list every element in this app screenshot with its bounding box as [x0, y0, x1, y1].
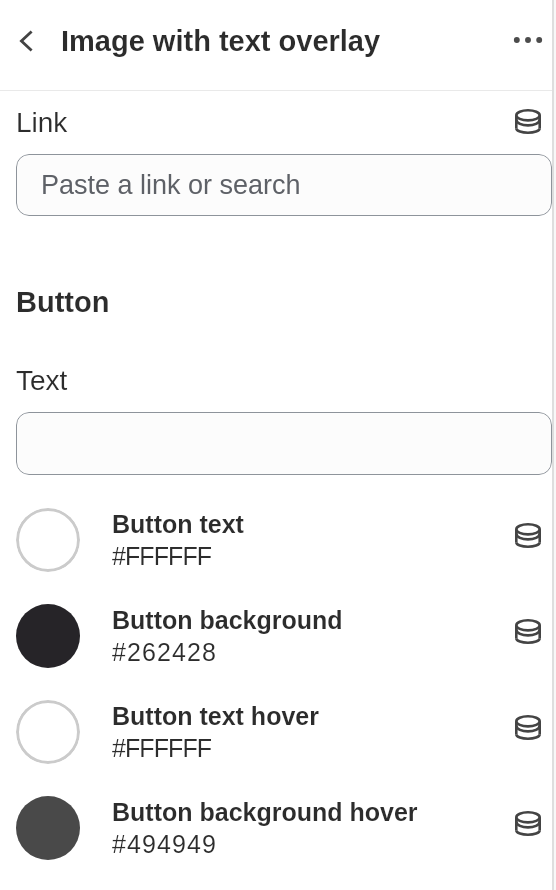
staticText: #494949 [112, 830, 218, 858]
button[interactable]: Data source [506, 99, 550, 143]
staticText: Button background [112, 606, 343, 634]
button[interactable]: Button text hover [0, 684, 556, 780]
button[interactable] [16, 412, 552, 475]
staticText: Text [16, 365, 68, 396]
button[interactable]: Button background [0, 588, 556, 684]
staticText: Paste a link or search [41, 170, 301, 200]
button[interactable]: Button text [0, 492, 556, 588]
staticText: #262428 [112, 638, 218, 666]
button[interactable]: Data source [506, 705, 550, 749]
staticText: Button [16, 286, 110, 318]
button[interactable]: Data source [506, 609, 550, 653]
staticText: #FFFFFF [112, 734, 212, 762]
button[interactable]: Button background hover [0, 780, 556, 876]
staticText: Image with text overlay [61, 25, 381, 57]
button[interactable]: Back [4, 19, 48, 63]
button[interactable]: Data source [506, 513, 550, 557]
staticText: Button background hover [112, 798, 418, 826]
staticText: Button text [112, 510, 244, 538]
button[interactable]: More options [506, 18, 550, 62]
staticText: #FFFFFF [112, 542, 212, 570]
button[interactable]: Paste a link or search [16, 154, 552, 216]
button[interactable]: Data source [506, 801, 550, 845]
staticText: Link [16, 107, 68, 138]
staticText: Button text hover [112, 702, 319, 730]
